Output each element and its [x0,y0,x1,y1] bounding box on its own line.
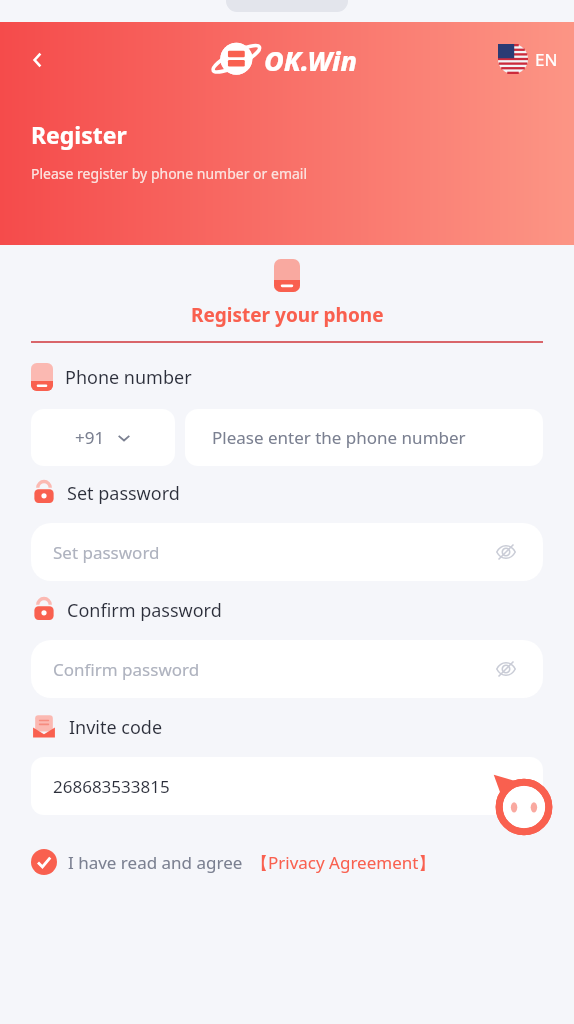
button[interactable]: 268683533815 [31,757,543,815]
staticText: Phone number [65,365,192,390]
button[interactable]: Back [18,40,58,80]
button[interactable]: Confirm password [31,640,543,698]
button[interactable]: EN [498,44,558,74]
button[interactable]: I have read and agree [31,849,574,875]
button[interactable]: Customer support [490,773,558,841]
staticText: Confirm password [67,598,222,623]
staticText: Set password [53,541,160,564]
button[interactable]: Set password [31,523,543,581]
button[interactable]: +91 [31,409,175,466]
button[interactable]: Please enter the phone number [185,409,543,466]
staticText: Set password [67,481,180,506]
staticText: Please register by phone number or email [31,164,308,183]
button[interactable]: Toggle password visibility [491,537,521,567]
staticText: +91 [75,426,105,449]
staticText: Invite code [69,715,163,740]
button[interactable]: Toggle password visibility [491,654,521,684]
staticText: Register your phone [191,302,384,328]
staticText: 268683533815 [53,775,170,798]
staticText: Confirm password [53,658,200,681]
staticText: Please enter the phone number [212,426,466,449]
staticText: OK.Win [264,42,357,79]
staticText: I have read and agree [68,851,243,874]
staticText: Register [31,119,127,150]
staticText: EN [535,48,558,71]
staticText: 【Privacy Agreement】 [251,851,436,874]
